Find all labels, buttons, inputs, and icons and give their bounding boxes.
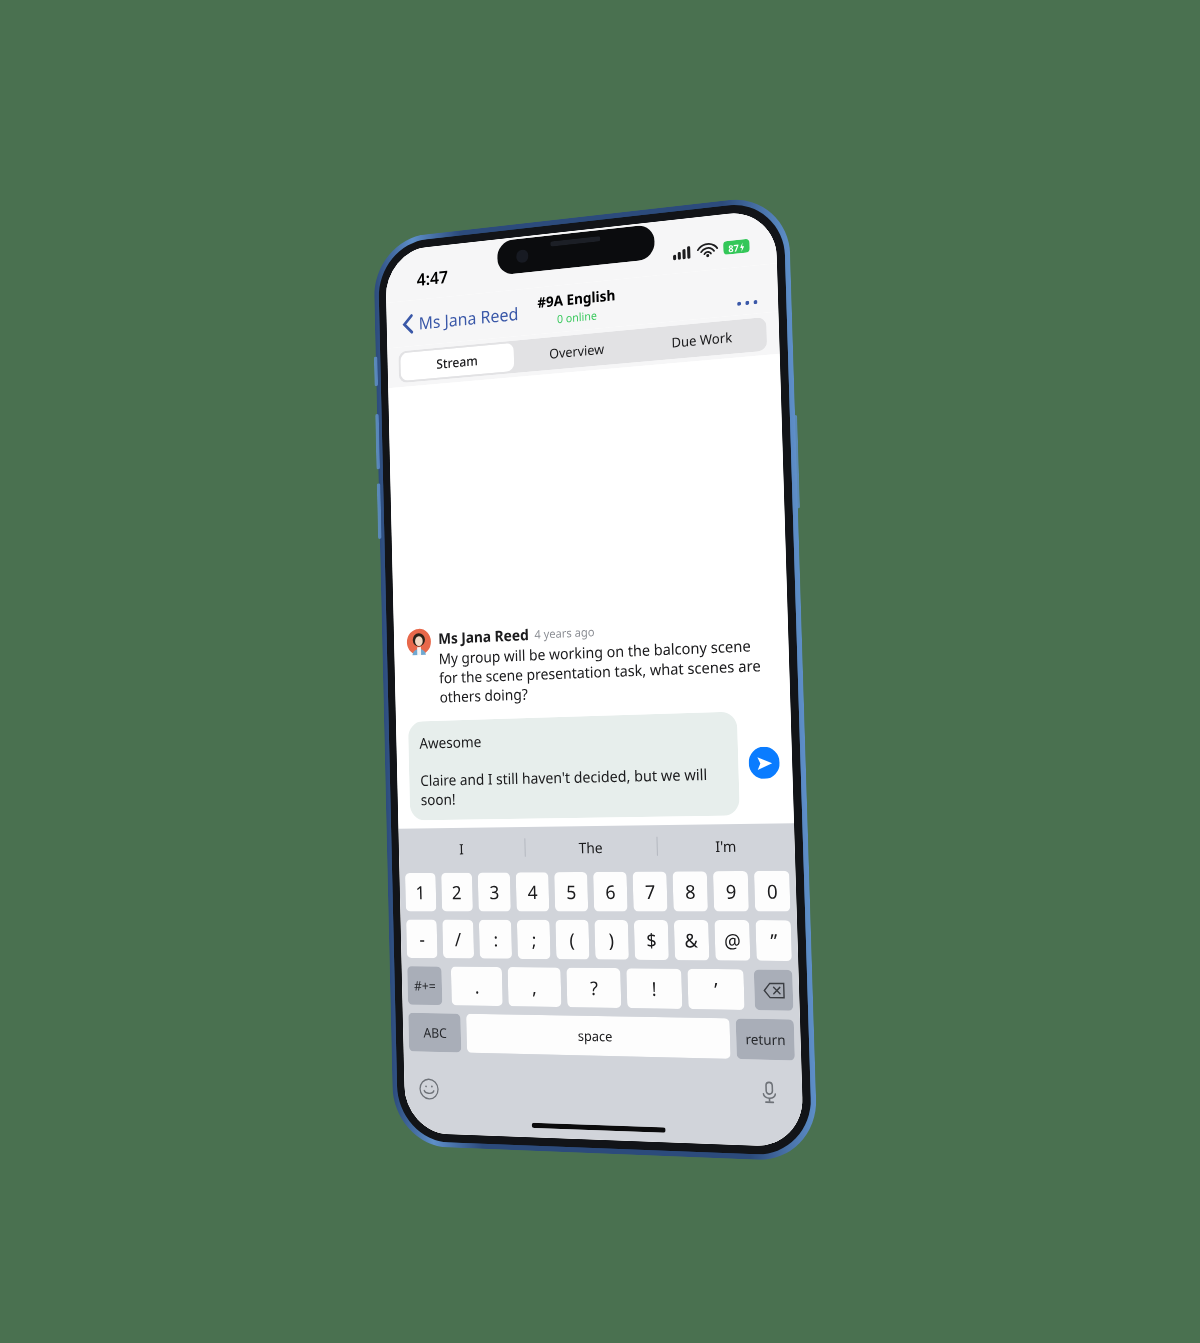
button[interactable]: Due Work bbox=[640, 319, 765, 360]
button[interactable]: @ bbox=[714, 920, 750, 961]
staticText: Awesome bbox=[419, 731, 482, 753]
staticText: return bbox=[745, 1029, 786, 1049]
staticText: 0 bbox=[767, 878, 779, 905]
staticText: #+= bbox=[414, 976, 436, 995]
staticText: #9A English bbox=[537, 285, 616, 312]
button[interactable]: space bbox=[466, 1014, 731, 1059]
button[interactable]: More options bbox=[729, 291, 766, 315]
staticText: 0 online bbox=[557, 307, 598, 326]
staticText: Overview bbox=[549, 339, 605, 363]
button[interactable]: $ bbox=[634, 920, 669, 960]
button[interactable]: ABC bbox=[408, 1013, 461, 1053]
staticText: I'm bbox=[715, 836, 737, 856]
button[interactable]: 2 bbox=[441, 873, 473, 911]
button[interactable]: ; bbox=[517, 920, 550, 959]
staticText: 4:47 bbox=[416, 265, 448, 291]
button[interactable]: return bbox=[736, 1018, 795, 1060]
button[interactable]: 8 bbox=[672, 871, 708, 911]
staticText: , bbox=[532, 974, 537, 1000]
button[interactable]: The bbox=[525, 825, 657, 868]
button[interactable]: : bbox=[479, 920, 512, 959]
button[interactable]: 6 bbox=[593, 872, 628, 911]
staticText: . bbox=[474, 974, 480, 1000]
button[interactable]: Overview bbox=[517, 331, 637, 371]
staticText: 5 bbox=[566, 879, 577, 905]
button[interactable]: , bbox=[507, 967, 561, 1007]
button[interactable]: Ms Jana Reed bbox=[399, 297, 523, 340]
button[interactable]: Stream bbox=[400, 343, 514, 381]
button[interactable]: 5 bbox=[554, 872, 588, 911]
staticText: Ms Jana Reed bbox=[438, 624, 530, 648]
button[interactable]: Backspace bbox=[754, 969, 793, 1011]
button[interactable]: Send bbox=[748, 746, 780, 779]
staticText: 1 bbox=[415, 880, 426, 905]
button[interactable]: I'm bbox=[657, 823, 795, 867]
staticText: Due Work bbox=[671, 327, 733, 352]
staticText: The bbox=[578, 837, 603, 857]
staticText: My group will be working on the balcony … bbox=[438, 634, 773, 707]
button[interactable]: ’ bbox=[687, 969, 745, 1010]
staticText: 8 bbox=[685, 879, 697, 905]
staticText: 7 bbox=[645, 879, 656, 905]
staticText: ’ bbox=[714, 976, 719, 1003]
button[interactable]: 7 bbox=[632, 871, 668, 911]
staticText: $ bbox=[646, 927, 658, 954]
button[interactable]: ? bbox=[566, 968, 621, 1008]
button[interactable]: 3 bbox=[478, 872, 511, 911]
staticText: & bbox=[684, 927, 699, 954]
button[interactable]: ) bbox=[594, 920, 629, 960]
staticText: 3 bbox=[489, 880, 500, 905]
staticText: ! bbox=[651, 976, 657, 1002]
staticText: Claire and I still haven't decided, but … bbox=[420, 763, 727, 809]
staticText: 9 bbox=[725, 878, 737, 905]
button[interactable]: Awesome bbox=[408, 711, 740, 820]
staticText: / bbox=[454, 927, 462, 952]
staticText: 2 bbox=[451, 880, 462, 905]
staticText: 4 years ago bbox=[534, 624, 596, 643]
button[interactable]: - bbox=[406, 919, 437, 958]
button[interactable]: 0 bbox=[754, 871, 790, 912]
button[interactable]: Dictate bbox=[759, 1079, 780, 1106]
staticText: @ bbox=[724, 927, 742, 954]
staticText: space bbox=[578, 1026, 613, 1046]
staticText: ) bbox=[608, 927, 615, 953]
button[interactable]: / bbox=[442, 920, 474, 958]
staticText: 4 bbox=[527, 879, 538, 905]
button[interactable]: & bbox=[674, 920, 709, 960]
button[interactable]: Emoji bbox=[417, 1076, 441, 1102]
button[interactable]: . bbox=[451, 966, 503, 1006]
staticText: 87 bbox=[728, 241, 740, 254]
staticText: : bbox=[493, 927, 499, 953]
staticText: ( bbox=[569, 927, 576, 953]
button[interactable]: 1 bbox=[405, 873, 436, 911]
button[interactable]: #+= bbox=[407, 966, 442, 1005]
staticText: ; bbox=[531, 927, 537, 953]
staticText: ” bbox=[770, 928, 778, 954]
button[interactable]: I bbox=[398, 827, 525, 869]
staticText: Stream bbox=[436, 351, 478, 373]
button[interactable]: 9 bbox=[713, 871, 749, 911]
button[interactable]: ” bbox=[755, 920, 792, 961]
button[interactable]: ! bbox=[626, 968, 682, 1009]
staticText: - bbox=[419, 927, 425, 952]
staticText: Ms Jana Reed bbox=[418, 302, 519, 335]
button[interactable]: 4 bbox=[516, 872, 549, 911]
staticText: I bbox=[459, 839, 464, 858]
staticText: ? bbox=[590, 975, 598, 1001]
staticText: ABC bbox=[423, 1023, 447, 1042]
staticText: 6 bbox=[605, 879, 617, 905]
button[interactable]: ( bbox=[555, 920, 589, 959]
